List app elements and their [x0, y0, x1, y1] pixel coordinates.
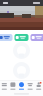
- button[interactable]: Saved homes: [14, 34, 28, 41]
- button[interactable]: Inbox: [34, 80, 43, 91]
- button[interactable]: Home: [17, 80, 26, 91]
- button[interactable]: Explore: [9, 80, 17, 91]
- button[interactable]: Saved: [26, 80, 34, 91]
- button[interactable]: Tours: [30, 34, 43, 41]
- button[interactable]: Feed: [0, 80, 9, 91]
- button[interactable]: Search nearby: [0, 34, 12, 41]
